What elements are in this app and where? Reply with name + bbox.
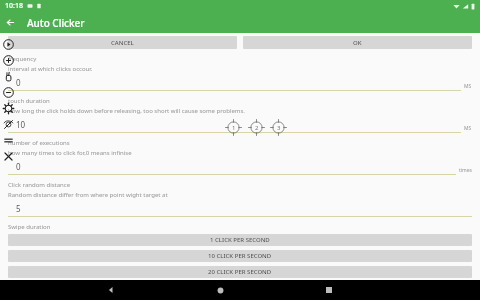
staticText: CANCEL	[111, 39, 134, 47]
button[interactable]: Start	[0, 36, 16, 52]
button[interactable]: Menu	[0, 132, 16, 148]
staticText: MS	[464, 83, 472, 90]
staticText: 10	[16, 119, 26, 130]
button[interactable]: Back	[0, 12, 21, 33]
staticText: OK	[353, 39, 362, 47]
button[interactable]: 20 CLICK PER SECOND	[8, 266, 472, 278]
staticText: 0	[16, 77, 21, 88]
button[interactable]: Settings	[0, 100, 16, 116]
staticText: 20 CLICK PER SECOND	[208, 268, 272, 276]
staticText: Random distance differ from where point …	[8, 191, 168, 199]
staticText: number of executions	[8, 139, 70, 147]
button[interactable]: 10 CLICK PER SECOND	[8, 250, 472, 262]
button[interactable]: Close	[0, 148, 16, 164]
staticText: 0	[16, 161, 21, 172]
button[interactable]: Tap mode	[0, 68, 16, 84]
staticText: 10 CLICK PER SECOND	[208, 252, 272, 260]
staticText: 5	[16, 203, 21, 214]
staticText: times	[459, 167, 472, 174]
staticText: how long the click holds down before rel…	[8, 107, 245, 115]
button[interactable]: Recent apps	[321, 282, 337, 298]
staticText: touch duration	[8, 97, 50, 105]
staticText: MS	[464, 125, 472, 132]
staticText: 1 CLICK PER SECOND	[210, 236, 270, 244]
staticText: frequency	[8, 55, 37, 63]
button[interactable]: CANCEL	[8, 36, 237, 49]
staticText: Click random distance	[8, 181, 71, 189]
staticText: Swipe duration	[8, 223, 51, 231]
staticText: 2	[255, 124, 259, 132]
button[interactable]: Back	[103, 282, 119, 298]
button[interactable]: Hide	[0, 116, 16, 132]
staticText: 3	[277, 124, 281, 132]
button[interactable]: Remove point	[0, 84, 16, 100]
button[interactable]: Add point	[0, 52, 16, 68]
button[interactable]: Home	[212, 282, 228, 298]
staticText: 1	[232, 124, 236, 132]
staticText: 10:18	[5, 1, 23, 11]
staticText: Auto Clicker	[27, 16, 85, 30]
staticText: interval at which clicks occour.	[8, 65, 93, 73]
staticText: how many times to click for,0 means infi…	[8, 149, 132, 157]
button[interactable]: 1 CLICK PER SECOND	[8, 234, 472, 246]
button[interactable]: OK	[243, 36, 472, 49]
